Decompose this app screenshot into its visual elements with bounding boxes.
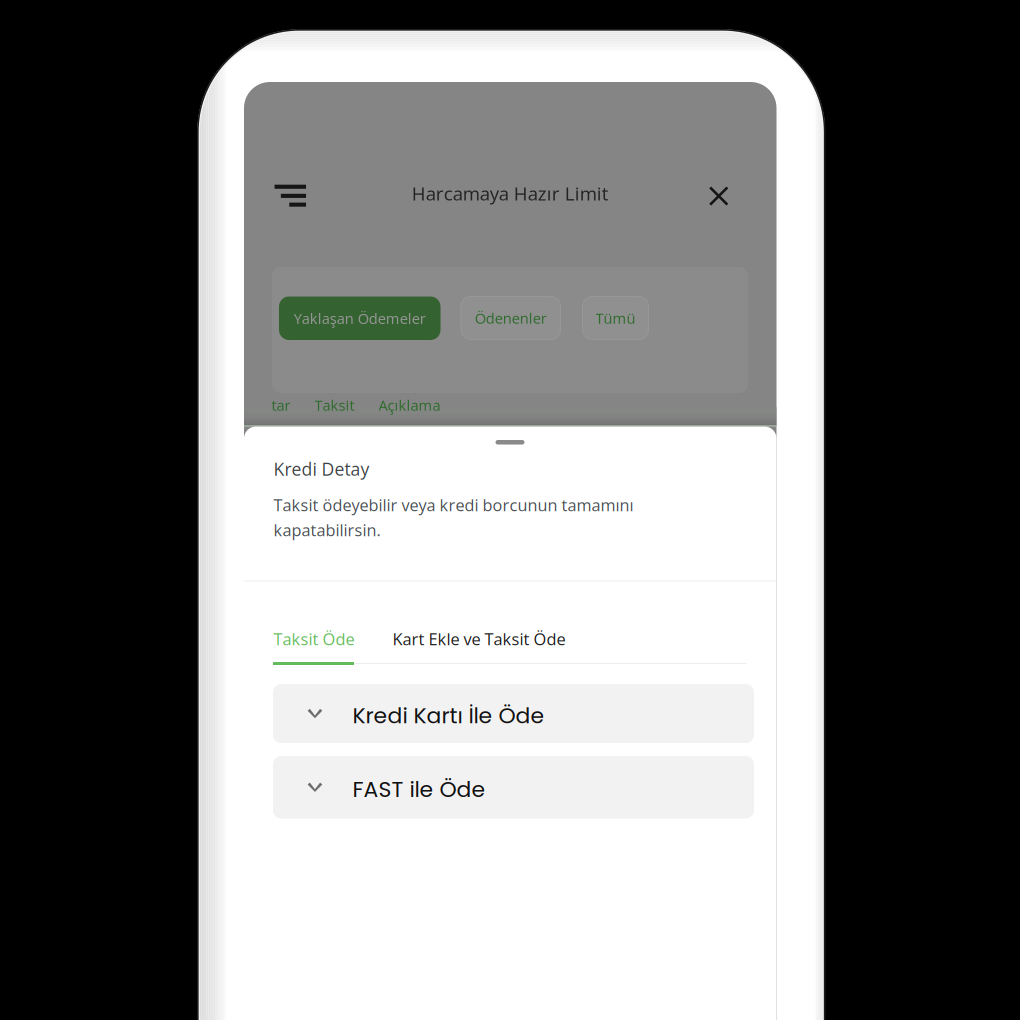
button[interactable]: Filtrele	[272, 185, 308, 207]
staticText: Taksit ödeyebilir veya kredi borcunun ta…	[273, 494, 633, 516]
staticText: Taksit	[315, 395, 355, 415]
staticText: Açıklama	[379, 395, 441, 415]
staticText: Yaklaşan Ödemeler	[294, 308, 426, 328]
staticText: Tümü	[595, 308, 635, 328]
button[interactable]: Yaklaşan Ödemeler	[279, 296, 440, 340]
staticText: tar	[272, 395, 291, 415]
staticText: Kredi Detay	[273, 457, 369, 481]
staticText: Taksit Öde	[273, 628, 354, 650]
button[interactable]: Kart Ekle ve Taksit Öde	[392, 628, 565, 650]
button[interactable]: FAST ile Öde	[0, 0, 1020, 1020]
button[interactable]: Tümü	[582, 296, 648, 339]
staticText: Ödenenler	[475, 308, 547, 328]
button[interactable]: Ödenenler	[461, 296, 560, 339]
button[interactable]: Kapat	[709, 186, 728, 206]
staticText: Harcamaya Hazır Limit	[412, 180, 609, 206]
staticText: FAST ile Öde	[352, 774, 485, 804]
staticText: Kart Ekle ve Taksit Öde	[392, 628, 565, 650]
button[interactable]: Kredi Kartı İle Öde	[0, 0, 1020, 1020]
staticText: kapatabilirsin.	[273, 519, 380, 541]
staticText: Kredi Kartı İle Öde	[352, 700, 544, 731]
button[interactable]: Taksit Öde	[273, 628, 354, 650]
